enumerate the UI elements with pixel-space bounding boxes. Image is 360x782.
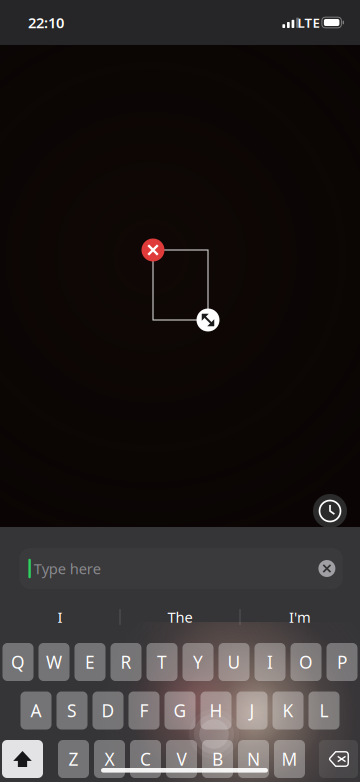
button[interactable]: P [326, 643, 357, 681]
staticText: LTE [297, 14, 319, 31]
button[interactable]: B [202, 740, 233, 778]
staticText: U [227, 650, 240, 673]
button[interactable]: U [218, 643, 249, 681]
button[interactable]: I'm [240, 597, 360, 637]
button[interactable]: E [74, 643, 105, 681]
staticText: A [30, 699, 41, 722]
staticText: X [104, 747, 114, 770]
staticText: Type here [34, 559, 101, 578]
staticText: T [157, 650, 167, 673]
button[interactable]: Y [182, 643, 213, 681]
staticText: L [319, 699, 328, 722]
staticText: N [247, 747, 260, 770]
staticText: P [337, 650, 347, 673]
staticText: E [85, 650, 95, 673]
button[interactable]: H [200, 691, 231, 729]
staticText: C [140, 747, 151, 770]
button[interactable]: N [238, 740, 269, 778]
button[interactable]: Q [2, 643, 33, 681]
staticText: F [139, 699, 148, 722]
button[interactable]: F [128, 691, 159, 729]
button[interactable]: Shift [2, 740, 43, 778]
staticText: K [282, 699, 293, 722]
button[interactable]: C [130, 740, 161, 778]
staticText: M [281, 747, 297, 770]
button[interactable]: Recents [308, 489, 352, 533]
button[interactable]: S [56, 691, 87, 729]
button[interactable]: Delete [319, 740, 358, 778]
button[interactable]: L [308, 691, 339, 729]
button[interactable]: T [146, 643, 177, 681]
staticText: R [120, 650, 131, 673]
button[interactable]: V [166, 740, 197, 778]
staticText: The [167, 607, 192, 627]
staticText: O [299, 650, 313, 673]
button[interactable]: A [20, 691, 51, 729]
staticText: S [67, 699, 77, 722]
button[interactable]: X [94, 740, 125, 778]
staticText: G [173, 699, 186, 722]
button[interactable]: Delete selection [141, 238, 164, 261]
button[interactable]: R [110, 643, 141, 681]
button[interactable]: K [272, 691, 303, 729]
staticText: Z [68, 747, 78, 770]
staticText: Q [11, 650, 25, 673]
button[interactable]: D [92, 691, 123, 729]
staticText: I'm [289, 607, 311, 627]
button[interactable]: M [274, 740, 305, 778]
button[interactable]: J [236, 691, 267, 729]
button[interactable]: Z [58, 740, 89, 778]
button[interactable]: I [0, 597, 120, 637]
button[interactable]: I [254, 643, 285, 681]
button[interactable]: O [290, 643, 321, 681]
button[interactable]: The [120, 597, 240, 637]
staticText: I [57, 607, 62, 627]
staticText: I [267, 650, 273, 673]
button[interactable]: Resize selection [196, 308, 219, 331]
staticText: W [46, 650, 62, 673]
button[interactable]: G [164, 691, 195, 729]
button[interactable]: W [38, 643, 69, 681]
staticText: H [209, 699, 222, 722]
staticText: B [212, 747, 223, 770]
staticText: Y [193, 650, 203, 673]
staticText: V [176, 747, 186, 770]
button[interactable]: Type here [19, 548, 343, 589]
staticText: 22:10 [28, 13, 64, 32]
staticText: J [249, 699, 254, 722]
staticText: D [101, 699, 114, 722]
